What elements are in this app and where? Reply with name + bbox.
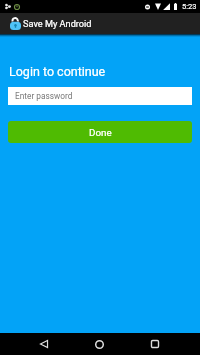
staticText: Enter password (15, 91, 73, 101)
button[interactable]: Done (8, 121, 192, 143)
button[interactable]: Enter password (8, 87, 192, 105)
staticText: 5:23 (182, 2, 197, 11)
button[interactable]: Recent apps (127, 333, 182, 355)
staticText: Save My Android (23, 18, 92, 29)
button[interactable]: Back (16, 333, 72, 355)
button[interactable]: Home (72, 333, 127, 355)
staticText: Login to continue (9, 64, 106, 79)
staticText: Done (89, 127, 112, 138)
